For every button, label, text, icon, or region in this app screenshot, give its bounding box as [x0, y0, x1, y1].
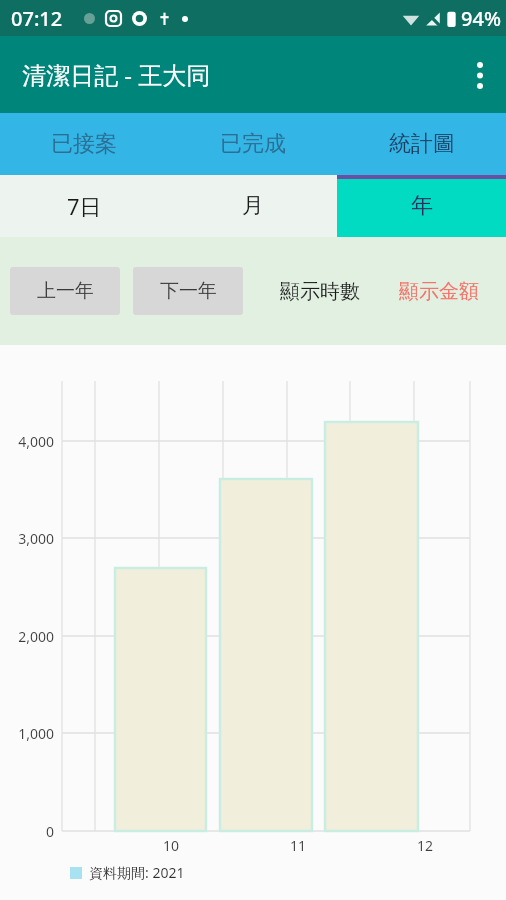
staticText: 資料期間: 2021: [89, 863, 185, 882]
staticText: 94%: [461, 5, 501, 32]
staticText: 月: [242, 192, 264, 220]
staticText: 下一年: [160, 279, 217, 303]
staticText: 已完成: [220, 130, 286, 158]
staticText: 11: [282, 836, 314, 855]
button[interactable]: 顯示時數: [261, 237, 379, 345]
button[interactable]: 已接案: [0, 113, 168, 175]
staticText: 1,000: [0, 724, 54, 743]
button[interactable]: 上一年: [10, 267, 120, 315]
staticText: 4,000: [0, 432, 54, 451]
staticText: 上一年: [37, 279, 94, 303]
staticText: 07:12: [11, 5, 63, 32]
staticText: 顯示金額: [399, 279, 479, 304]
button[interactable]: 下一年: [133, 267, 243, 315]
staticText: 10: [155, 836, 187, 855]
staticText: 已接案: [51, 130, 117, 158]
staticText: 12: [409, 836, 441, 855]
staticText: 3,000: [0, 529, 54, 548]
button[interactable]: 顯示金額: [379, 237, 498, 345]
button[interactable]: 已完成: [168, 113, 337, 175]
staticText: 0: [0, 822, 54, 841]
button[interactable]: 年: [337, 175, 506, 237]
button[interactable]: More options: [454, 49, 506, 101]
staticText: 統計圖: [389, 130, 455, 158]
button[interactable]: 月: [168, 175, 337, 237]
staticText: 2,000: [0, 627, 54, 646]
button[interactable]: 7日: [0, 175, 168, 237]
button[interactable]: 統計圖: [337, 113, 506, 175]
staticText: 顯示時數: [280, 279, 360, 304]
staticText: 7日: [67, 191, 102, 221]
staticText: 年: [411, 192, 433, 220]
staticText: 清潔日記 - 王大同: [22, 58, 211, 91]
